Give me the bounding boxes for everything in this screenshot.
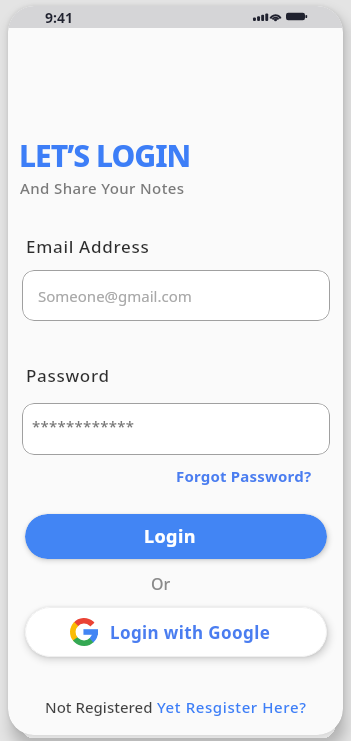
staticText: Yet Resgister Here? — [157, 697, 307, 717]
button[interactable]: Forgot Password? — [176, 466, 312, 486]
button[interactable]: Someone@gmail.com — [22, 270, 330, 321]
button[interactable]: Login — [25, 514, 327, 559]
staticText: And Share Your Notes — [20, 178, 185, 198]
staticText: 9:41 — [45, 8, 73, 27]
staticText: Someone@gmail.com — [38, 286, 192, 306]
staticText: Login — [144, 524, 196, 549]
button[interactable]: Not Registered — [8, 697, 343, 717]
button[interactable]: Login with Google — [25, 607, 327, 657]
staticText: Email Address — [26, 235, 150, 258]
staticText: Password — [26, 364, 110, 387]
staticText: Not Registered — [45, 697, 157, 717]
staticText: LET’S LOGIN — [19, 135, 191, 176]
staticText: ************ — [32, 416, 135, 436]
button[interactable]: ************ — [22, 403, 330, 455]
staticText: Or — [151, 573, 171, 595]
staticText: Login with Google — [110, 621, 271, 644]
staticText: Forgot Password? — [176, 466, 312, 486]
